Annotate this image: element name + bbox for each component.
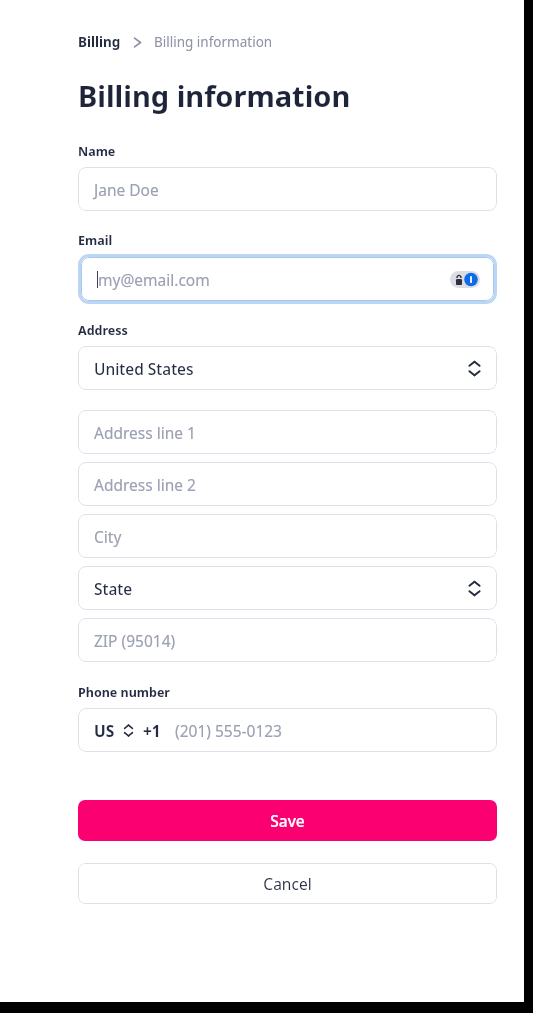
staticText: Phone number [78, 684, 170, 701]
staticText: +1 [143, 720, 161, 741]
staticText: Save [270, 810, 305, 831]
staticText: Billing information [154, 33, 273, 51]
button[interactable]: US [78, 708, 497, 752]
button[interactable]: City [78, 514, 497, 558]
staticText: United States [94, 358, 466, 379]
staticText: Address line 1 [94, 422, 483, 443]
staticText: Address line 2 [94, 474, 483, 495]
button[interactable]: Address line 2 [78, 462, 497, 506]
other: Autofill secure information [450, 271, 480, 288]
button[interactable]: Cancel [78, 863, 497, 904]
staticText: Billing [78, 33, 121, 51]
staticText: Billing information [78, 76, 351, 115]
button[interactable]: Jane Doe [78, 167, 497, 211]
staticText: (201) 555-0123 [175, 720, 282, 741]
staticText: Jane Doe [94, 179, 483, 200]
staticText: Cancel [263, 873, 312, 894]
staticText: ZIP (95014) [94, 630, 483, 651]
staticText: my@email.com [98, 269, 450, 290]
staticText: State [94, 578, 466, 599]
button[interactable]: Save [78, 800, 497, 841]
staticText: Name [78, 143, 116, 160]
staticText: US [94, 720, 115, 741]
button[interactable]: United States [78, 346, 497, 390]
button[interactable]: ZIP (95014) [78, 618, 497, 662]
staticText: City [94, 526, 483, 547]
button[interactable]: Address line 1 [78, 410, 497, 454]
staticText: Address [78, 322, 128, 339]
button[interactable]: Billing [78, 33, 121, 51]
button[interactable]: State [78, 566, 497, 610]
button[interactable]: my@email.com [81, 257, 494, 301]
staticText: Email [78, 232, 113, 249]
